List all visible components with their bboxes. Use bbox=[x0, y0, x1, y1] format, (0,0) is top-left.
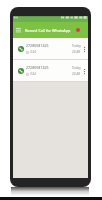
staticText: 3:24 bbox=[30, 50, 36, 54]
button[interactable]: Start recording bbox=[73, 22, 83, 38]
staticText: 27280581425 bbox=[26, 65, 49, 70]
staticText: 23:48 bbox=[72, 50, 81, 54]
button[interactable]: Open navigation menu bbox=[13, 22, 24, 38]
staticText: 27280581425 bbox=[26, 43, 49, 48]
staticText: 3:24 bbox=[30, 72, 36, 76]
button[interactable]: 27280581425 bbox=[13, 38, 88, 59]
button[interactable]: More options bbox=[81, 63, 88, 79]
staticText: Today bbox=[72, 66, 81, 70]
button[interactable]: More options bbox=[81, 41, 88, 57]
staticText: 23:48 bbox=[72, 72, 81, 76]
staticText: Record Call for WhatsApp bbox=[25, 28, 71, 33]
staticText: Today bbox=[72, 44, 81, 48]
button[interactable]: 27280581425 bbox=[13, 60, 88, 81]
